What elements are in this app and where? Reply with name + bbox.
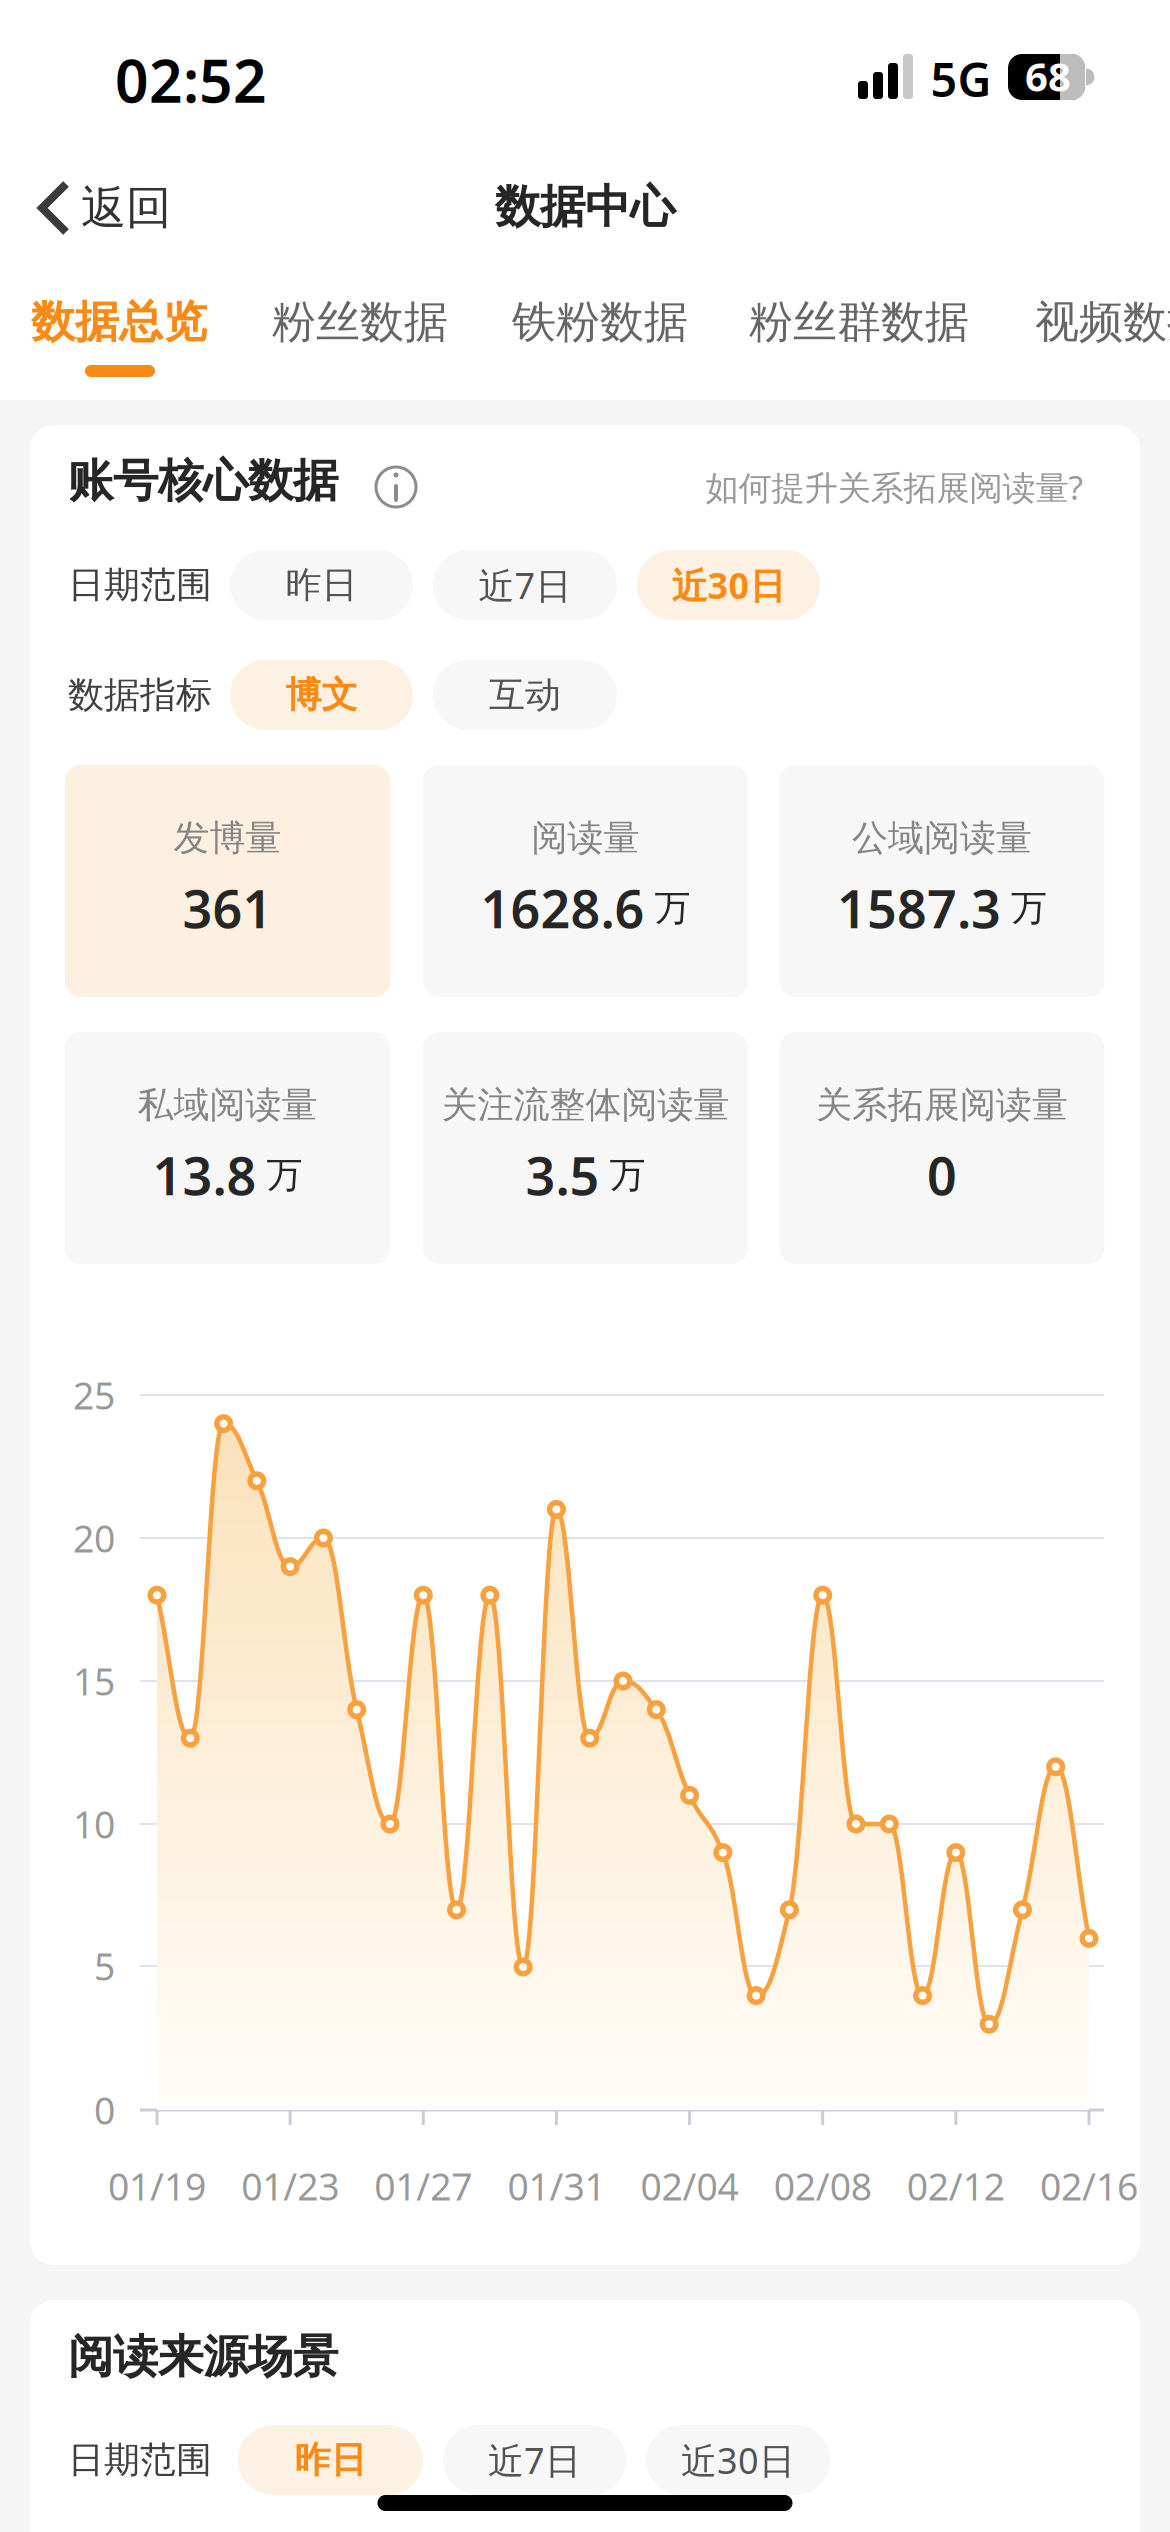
staticText: 万 [654,886,690,930]
button[interactable]: 近30日 [637,550,820,620]
button[interactable]: 铁粉数据 [0,0,1170,2532]
staticText: 昨日 [285,563,357,607]
staticText: 近7日 [478,561,571,609]
button[interactable]: 近30日 [646,2425,830,2495]
staticText: 02/04 [641,2161,739,2211]
staticText: 20 [73,1513,115,1563]
staticText: 日期范围 [68,2438,212,2482]
staticText: 关系拓展阅读量 [816,1083,1068,1127]
staticText: 0 [927,1140,957,1210]
staticText: 1628.6 [480,873,644,943]
staticText: 01/27 [374,2161,472,2211]
staticText: 25 [73,1370,115,1420]
staticText: 博文 [285,673,357,717]
staticText: 0 [94,2085,115,2135]
staticText: 3.5 [525,1140,599,1210]
staticText: 01/31 [507,2161,605,2211]
button[interactable]: 粉丝数据 [0,0,1170,2532]
button[interactable]: 昨日 [230,550,413,620]
staticText: 02/12 [907,2161,1005,2211]
staticText: 01/23 [241,2161,339,2211]
button[interactable]: 近7日 [443,2425,626,2495]
staticText: 5 [94,1941,115,1991]
staticText: 10 [73,1799,115,1849]
staticText: 近30日 [681,2436,795,2484]
button[interactable]: 博文 [230,660,413,730]
button[interactable]: 返回 [0,153,200,263]
button[interactable]: 视频数据 [0,0,1170,2532]
staticText: 私域阅读量 [137,1083,317,1127]
staticText: 数据指标 [68,673,212,717]
staticText: 68 [1025,49,1071,102]
button[interactable]: 互动 [433,660,617,730]
button[interactable]: 如何提升关系拓展阅读量? [705,465,1082,509]
staticText: 阅读量 [531,816,639,860]
staticText: 万 [1011,886,1047,930]
staticText: 发博量 [173,816,281,860]
button[interactable]: 近7日 [433,550,617,620]
staticText: 粉丝数据 [272,295,448,349]
button[interactable] [374,465,418,509]
staticText: 视频数据 [1035,295,1170,349]
staticText: 近30日 [671,561,785,609]
staticText: 账号核心数据 [68,453,338,509]
staticText: 如何提升关系拓展阅读量? [705,465,1082,509]
staticText: 粉丝群数据 [749,295,969,349]
staticText: 返回 [81,180,171,236]
button[interactable]: 粉丝群数据 [0,0,1170,2532]
staticText: 02/16 [1040,2161,1138,2211]
staticText: 铁粉数据 [512,295,688,349]
staticText: 1587.3 [837,873,1001,943]
staticText: 13.8 [152,1140,256,1210]
staticText: 互动 [489,673,561,717]
staticText: 关注流整体阅读量 [441,1083,729,1127]
staticText: 公域阅读量 [852,816,1032,860]
staticText: 02/08 [774,2161,872,2211]
staticText: 01/19 [108,2161,206,2211]
staticText: 数据中心 [495,179,675,235]
staticText: 近7日 [488,2436,581,2484]
staticText: 日期范围 [68,563,212,607]
button[interactable]: 数据总览 [0,0,1170,2532]
staticText: 361 [182,873,272,943]
staticText: 02:52 [115,41,267,119]
staticText: 昨日 [294,2438,366,2482]
button[interactable]: 昨日 [238,2425,423,2495]
staticText: 万 [266,1153,302,1197]
staticText: 5G [930,48,991,110]
staticText: 阅读来源场景 [68,2329,338,2385]
staticText: 数据总览 [31,295,207,349]
staticText: 万 [609,1153,645,1197]
staticText: 15 [73,1656,115,1706]
